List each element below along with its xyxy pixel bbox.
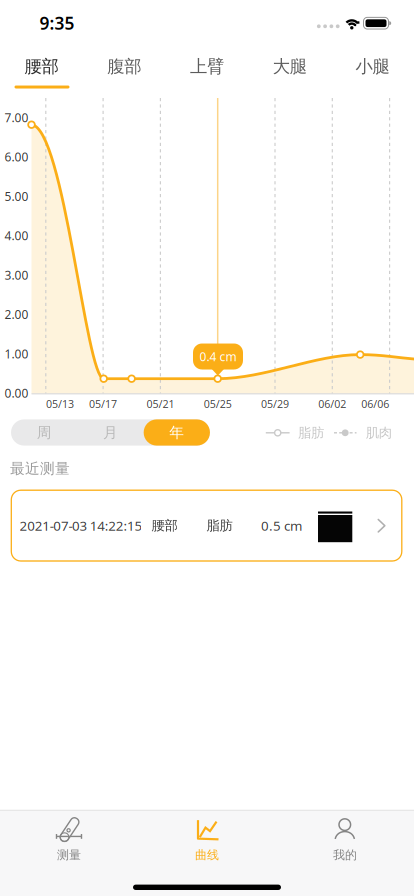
- staticText: 0.5 cm: [261, 517, 302, 534]
- button[interactable]: 2021-07-03 14:22:15: [11, 490, 402, 561]
- button[interactable]: 周: [11, 419, 77, 446]
- staticText: 05/17: [89, 397, 117, 411]
- button[interactable]: 脂肪: [265, 420, 325, 446]
- staticText: 腰部: [24, 56, 58, 77]
- staticText: 4.00: [4, 228, 28, 243]
- staticText: 上臂: [190, 56, 224, 77]
- staticText: 0.00: [4, 385, 28, 401]
- staticText: 年: [169, 423, 184, 441]
- button[interactable]: 测量: [0, 805, 138, 875]
- staticText: 05/21: [146, 397, 174, 411]
- staticText: 脂肪: [206, 517, 232, 534]
- staticText: 测量: [57, 848, 81, 862]
- staticText: 7.00: [4, 109, 28, 125]
- button[interactable]: 腹部: [83, 46, 166, 86]
- staticText: 9:35: [39, 11, 74, 34]
- staticText: 5.00: [4, 188, 28, 204]
- button[interactable]: 月: [77, 419, 144, 446]
- staticText: 2.00: [4, 306, 28, 322]
- staticText: 05/25: [204, 397, 232, 411]
- staticText: 小腿: [356, 56, 390, 77]
- staticText: 我的: [333, 848, 357, 862]
- staticText: 脂肪: [298, 425, 324, 441]
- staticText: 06/02: [318, 397, 346, 411]
- staticText: 05/29: [261, 397, 289, 411]
- button[interactable]: 小腿: [331, 46, 414, 86]
- staticText: 大腿: [273, 56, 307, 77]
- button[interactable]: 大腿: [248, 46, 331, 86]
- staticText: 肌肉: [366, 425, 392, 441]
- staticText: 06/06: [361, 397, 389, 411]
- staticText: 3.00: [4, 267, 28, 283]
- staticText: 腰部: [151, 517, 177, 534]
- staticText: 最近测量: [10, 459, 70, 477]
- staticText: 1.00: [4, 346, 28, 362]
- button[interactable]: 上臂: [166, 46, 248, 86]
- staticText: 2021-07-03 14:22:15: [20, 517, 142, 534]
- staticText: 周: [37, 423, 52, 441]
- staticText: 月: [103, 423, 118, 441]
- button[interactable]: 年: [144, 419, 210, 446]
- button[interactable]: 我的: [276, 805, 414, 875]
- staticText: 05/13: [46, 397, 74, 411]
- staticText: 0.4 cm: [199, 348, 236, 364]
- staticText: 曲线: [195, 848, 219, 862]
- staticText: 6.00: [4, 149, 28, 165]
- button[interactable]: 肌肉: [334, 420, 392, 446]
- button[interactable]: 腰部: [0, 46, 83, 86]
- button[interactable]: 曲线: [138, 805, 276, 875]
- staticText: 腹部: [107, 56, 141, 77]
